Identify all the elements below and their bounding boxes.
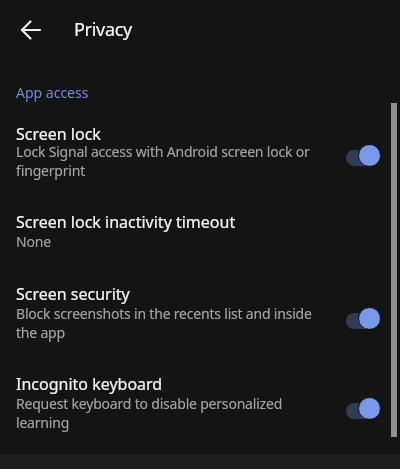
staticText: Request keyboard to disable personalized… — [16, 394, 283, 432]
staticText: None — [16, 232, 51, 251]
staticText: Incognito keyboard — [16, 373, 163, 395]
button[interactable] — [0, 108, 400, 196]
staticText: App access — [16, 83, 89, 102]
staticText: Screen lock — [16, 123, 101, 145]
staticText: Screen security — [16, 283, 130, 305]
staticText: Block screenshots in the recents list an… — [16, 304, 312, 342]
button[interactable] — [0, 358, 400, 446]
staticText: Lock Signal access with Android screen l… — [16, 142, 310, 180]
button[interactable] — [19, 18, 43, 42]
button[interactable] — [0, 268, 400, 358]
staticText: Screen lock inactivity timeout — [16, 211, 236, 233]
button[interactable] — [0, 196, 400, 268]
staticText: Privacy — [74, 17, 132, 42]
